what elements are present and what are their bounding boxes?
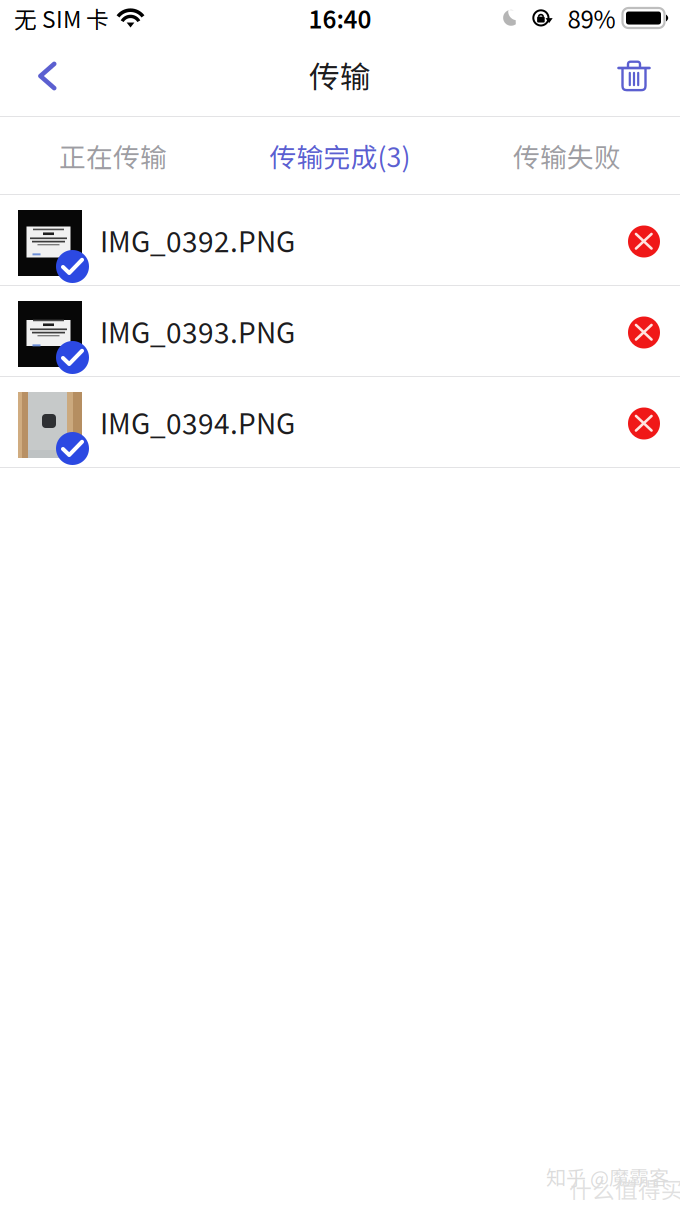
button[interactable]: 传输完成(3) — [226, 117, 454, 194]
button[interactable]: Remove — [628, 313, 660, 348]
staticText: 正在传输 — [59, 136, 167, 175]
button[interactable]: Remove — [628, 404, 660, 439]
staticText: IMG_0394.PNG — [100, 402, 295, 442]
staticText: 传输完成(3) — [269, 136, 410, 175]
button[interactable]: Delete — [588, 38, 680, 113]
button[interactable]: 传输失败 — [454, 117, 680, 194]
staticText: 无 SIM 卡 — [14, 2, 109, 34]
staticText: 16:40 — [308, 1, 371, 35]
staticText: 知乎 @魔霸客 — [546, 1162, 669, 1191]
staticText: IMG_0393.PNG — [100, 311, 295, 351]
button[interactable]: Back — [0, 39, 87, 112]
staticText: 传输失败 — [513, 136, 621, 175]
staticText: IMG_0392.PNG — [100, 220, 295, 260]
staticText: 什么值得买 — [569, 1172, 680, 1205]
button[interactable]: 正在传输 — [0, 117, 226, 194]
staticText: 89% — [567, 1, 615, 35]
staticText: 传输 — [309, 53, 371, 97]
button[interactable]: Remove — [628, 222, 660, 257]
